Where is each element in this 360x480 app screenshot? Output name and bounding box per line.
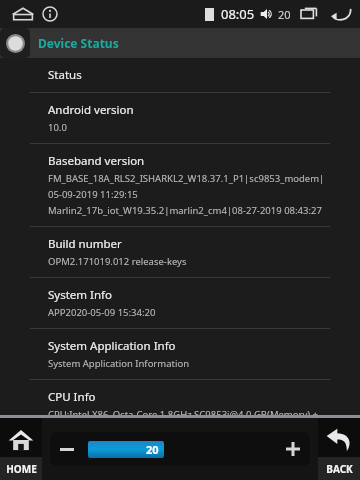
button[interactable]: CPU Info <box>0 380 360 418</box>
staticText: CPU:Intel X86_Octa-Core 1.8GHz SC9853i@4… <box>48 408 330 418</box>
staticText: 10.0 <box>48 121 67 134</box>
staticText: 20 <box>146 442 159 457</box>
button[interactable]: Back <box>330 3 352 25</box>
staticText: OPM2.171019.012 release-keys <box>48 255 187 268</box>
staticText: FM_BASE_18A_RLS2_ISHARKL2_W18.37.1_P1|sc… <box>48 172 325 185</box>
button[interactable]: Build number <box>0 227 360 278</box>
staticText: CPU Info <box>48 389 96 405</box>
button[interactable]: Volume down <box>50 432 84 466</box>
staticText: Marlin2_17b_iot_W19.35.2|marlin2_cm4|08-… <box>48 204 322 217</box>
button[interactable]: Status <box>0 58 360 93</box>
button[interactable]: HOME <box>0 418 42 480</box>
staticText: BACK <box>326 462 353 476</box>
staticText: APP2020-05-09 15:34:20 <box>48 306 156 319</box>
staticText: 08:05 <box>221 5 255 23</box>
staticText: Android version <box>48 102 134 118</box>
staticText: Baseband version <box>48 153 145 169</box>
staticText: HOME <box>6 462 37 476</box>
staticText: Status <box>48 67 82 83</box>
button[interactable]: BACK <box>318 418 360 480</box>
staticText: System Application Info <box>48 338 176 354</box>
button[interactable]: Home <box>10 1 36 27</box>
button[interactable]: Baseband version <box>0 144 360 227</box>
button[interactable]: Recents <box>300 4 320 24</box>
button[interactable]: Android version <box>0 93 360 144</box>
staticText: Build number <box>48 236 122 252</box>
staticText: Device Status <box>38 35 119 51</box>
button[interactable]: Info <box>42 6 58 22</box>
staticText: System Info <box>48 287 112 303</box>
button[interactable]: System Info <box>0 278 360 329</box>
staticText: 05-09-2019 11:29:15 <box>48 188 138 201</box>
button[interactable]: System Application Info <box>0 329 360 380</box>
button[interactable]: Volume up <box>276 432 310 466</box>
staticText: 20 <box>278 7 291 22</box>
staticText: System Application Information <box>48 357 190 370</box>
